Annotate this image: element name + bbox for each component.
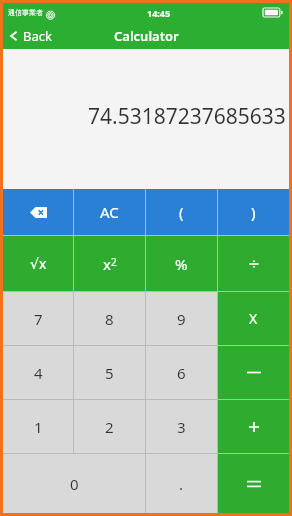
button[interactable]: 8 — [74, 292, 145, 345]
staticText: 4 — [34, 363, 43, 383]
button[interactable]: ) — [218, 189, 289, 235]
staticText: 7 — [34, 309, 43, 329]
button[interactable]: √x — [3, 236, 73, 291]
staticText: 6 — [177, 363, 186, 383]
staticText: 5 — [105, 363, 114, 383]
button[interactable]: ( — [146, 189, 217, 235]
staticText: Calculator — [114, 27, 179, 45]
staticText: 74.53187237685633 — [88, 102, 286, 131]
button[interactable]: Plus — [218, 400, 289, 453]
staticText: X — [249, 309, 258, 328]
button[interactable]: % — [146, 236, 217, 291]
button[interactable]: 0 — [3, 454, 145, 513]
staticText: AC — [100, 202, 119, 222]
staticText: 8 — [105, 309, 114, 329]
button[interactable]: 4 — [3, 346, 73, 399]
button[interactable]: Equals — [218, 454, 289, 513]
button[interactable]: 2 — [74, 400, 145, 453]
staticText: 2 — [105, 417, 114, 437]
button[interactable]: Backspace — [3, 189, 73, 235]
button[interactable]: Divide — [218, 236, 289, 291]
button[interactable]: 7 — [3, 292, 73, 345]
button[interactable]: 5 — [74, 346, 145, 399]
staticText: 通信事業者 — [8, 8, 43, 17]
button[interactable]: x2 — [74, 236, 145, 291]
staticText: 0 — [70, 474, 79, 494]
button[interactable]: 3 — [146, 400, 217, 453]
button[interactable]: 9 — [146, 292, 217, 345]
button[interactable]: . — [146, 454, 217, 513]
staticText: 3 — [177, 417, 186, 437]
staticText: 1 — [34, 417, 43, 437]
button[interactable]: AC — [74, 189, 145, 235]
button[interactable]: Minus — [218, 346, 289, 399]
button[interactable]: 6 — [146, 346, 217, 399]
staticText: Back — [23, 27, 52, 45]
staticText: . — [179, 474, 184, 494]
staticText: 14:45 — [147, 7, 171, 19]
button[interactable]: 1 — [3, 400, 73, 453]
staticText: 9 — [177, 309, 186, 329]
staticText: ) — [251, 202, 256, 222]
staticText: √x — [30, 254, 47, 273]
staticText: ( — [179, 202, 184, 222]
button[interactable]: Back — [3, 22, 62, 49]
staticText: % — [175, 254, 188, 274]
staticText: x2 — [103, 254, 117, 274]
button[interactable]: X — [218, 292, 289, 345]
